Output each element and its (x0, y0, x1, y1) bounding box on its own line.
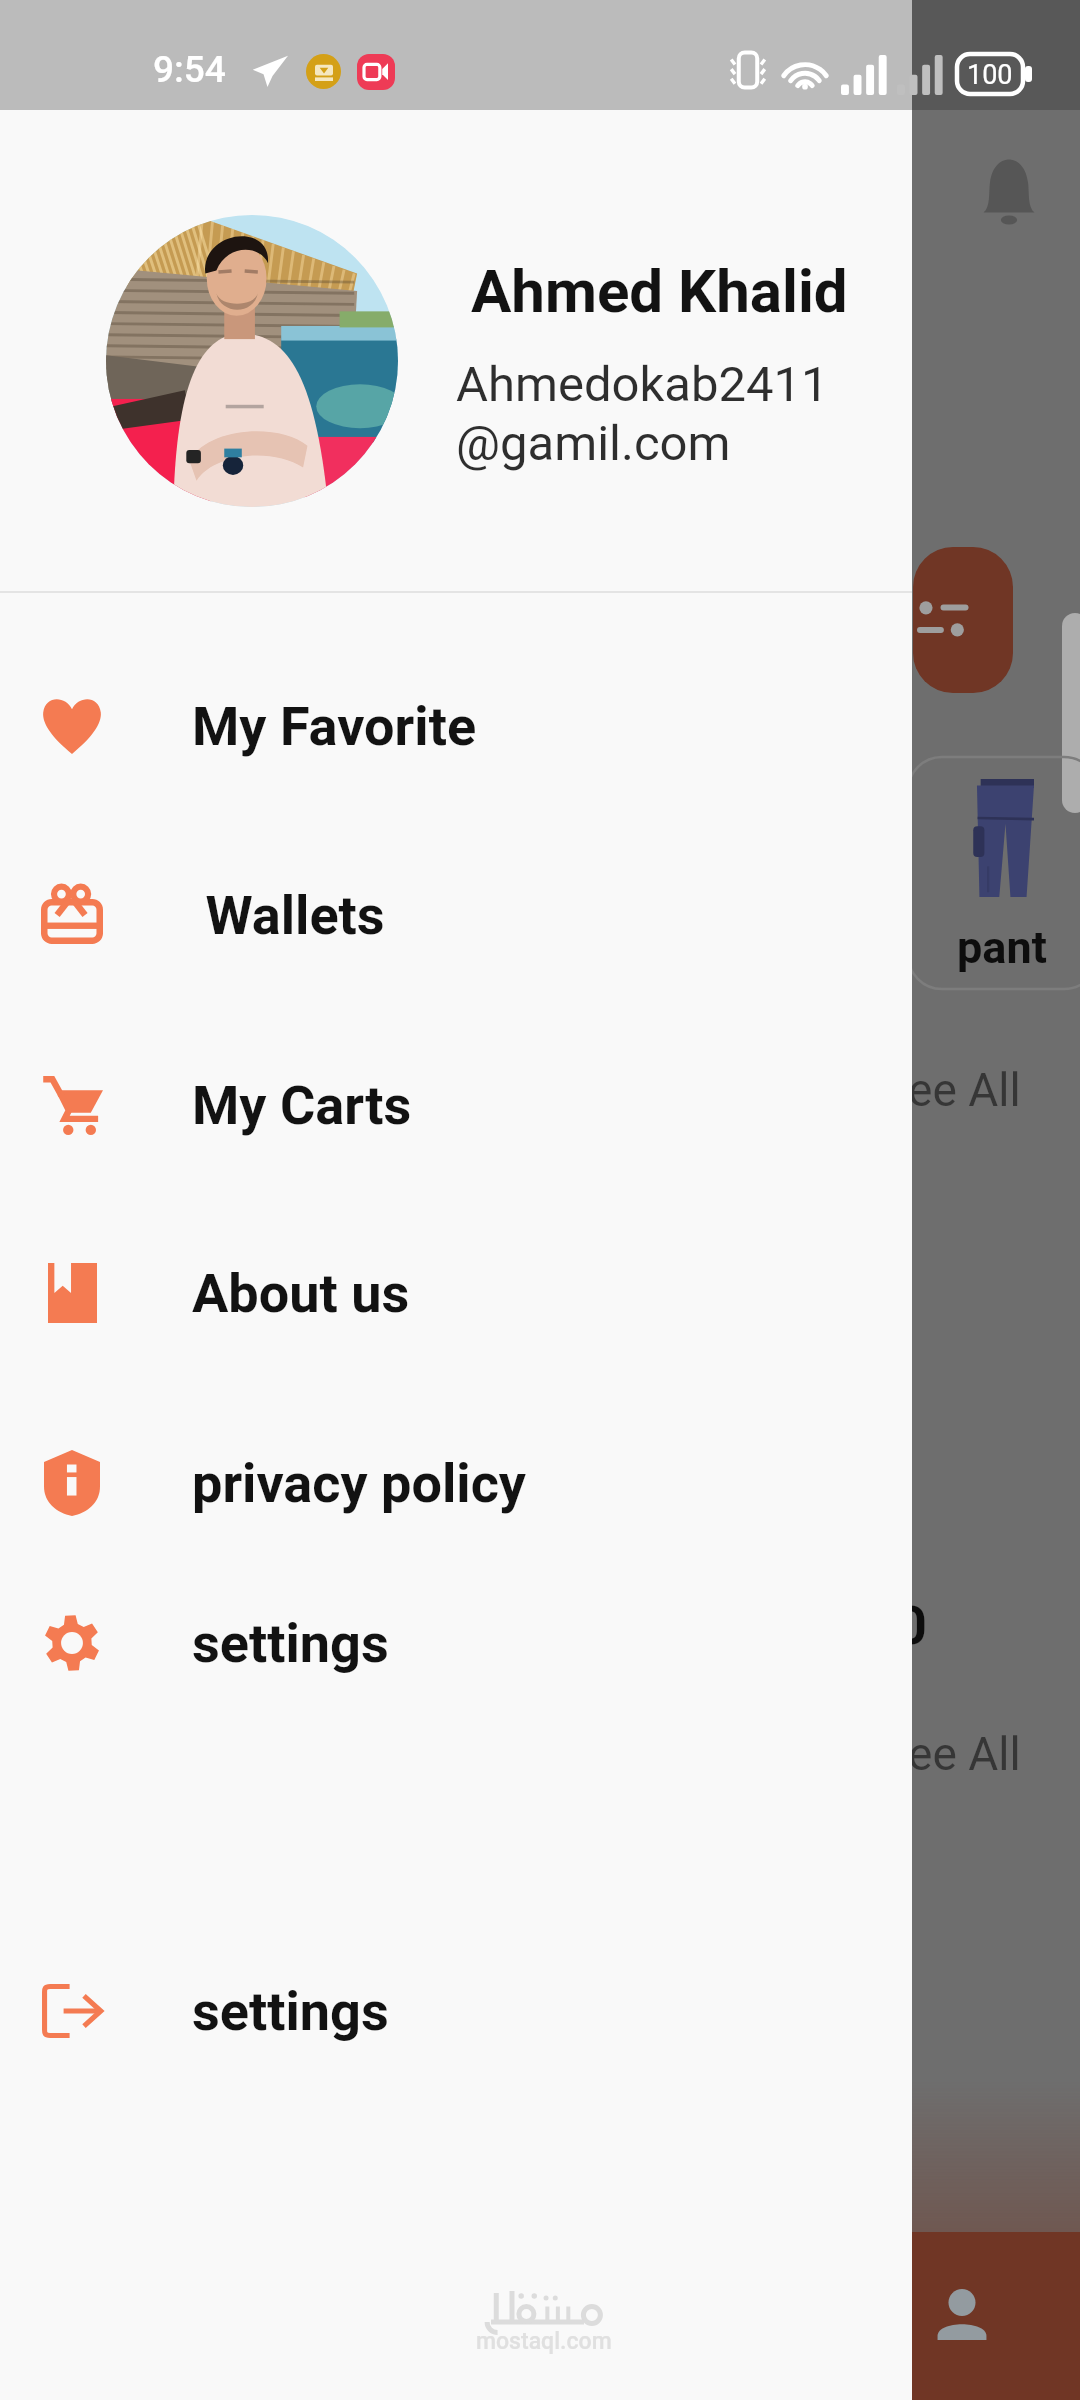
button[interactable]: privacy policy (0, 1413, 912, 1553)
staticText: My Favorite (192, 695, 477, 758)
button[interactable]: My Carts (0, 1035, 912, 1175)
button[interactable]: settings (0, 1573, 912, 1713)
staticText: ee All (908, 1063, 1021, 1117)
staticText: My Carts (192, 1074, 412, 1137)
staticText: mostaql.com (476, 2328, 612, 2355)
button[interactable] (106, 215, 398, 507)
staticText: ee All (908, 1727, 1021, 1781)
button[interactable]: My Favorite (0, 656, 912, 796)
button[interactable]: Filter (913, 547, 1013, 693)
staticText: settings (192, 1980, 389, 2043)
button[interactable]: Wallets (0, 845, 912, 985)
staticText: 9:54 (153, 48, 226, 91)
staticText: Ahmed Khalid (456, 256, 848, 326)
button[interactable]: Profile (912, 2270, 1012, 2362)
staticText: Ahmedokab2411@gamil.com (456, 356, 848, 472)
staticText: 0 (896, 1594, 927, 1657)
staticText: pant (957, 921, 1047, 974)
staticText: About us (192, 1262, 410, 1325)
staticText: Wallets (192, 884, 385, 947)
button[interactable]: Notifications (980, 158, 1038, 228)
button[interactable]: settings (0, 1941, 912, 2081)
staticText: privacy policy (192, 1452, 526, 1515)
staticText: settings (192, 1612, 389, 1675)
button[interactable]: About us (0, 1223, 912, 1363)
staticText: 100 (967, 59, 1013, 91)
